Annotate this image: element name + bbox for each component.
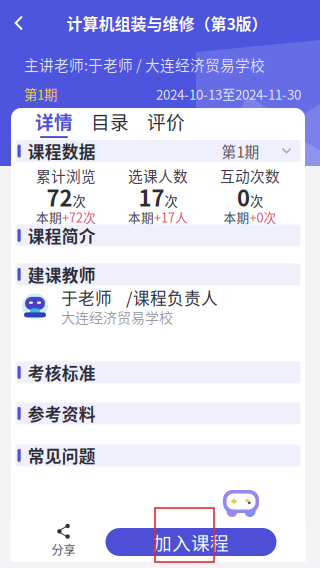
staticText: 于老师 [61,288,112,307]
staticText: +0次 [249,209,276,224]
staticText: 次 [250,192,263,208]
staticText: 课程数据 [28,141,96,161]
staticText: 大连经济贸易学校 [61,308,173,325]
staticText: 互动次数 [220,167,280,184]
staticText: 本期 [128,209,154,224]
button[interactable]: 详情 [35,110,73,138]
staticText: 常见问题 [28,445,96,465]
staticText: +72次 [62,209,96,224]
button[interactable]: 目录 [91,110,129,138]
button[interactable]: 返回 [0,6,44,40]
staticText: 次 [164,192,177,208]
staticText: 次 [72,192,85,208]
staticText: ✦ [229,494,239,508]
staticText: 选课人数 [128,167,188,184]
staticText: 累计浏览 [36,167,96,184]
staticText: 72 [46,185,72,208]
button[interactable]: 加入课程 [105,528,276,556]
staticText: 目录 [91,110,129,132]
staticText: 计算机组装与维修（第3版） [66,13,267,32]
staticText: 课程简介 [28,225,96,245]
staticText: 本期 [223,209,249,224]
staticText: 2024-10-13至2024-11-30 [156,86,301,102]
staticText: 加入课程 [153,531,229,553]
staticText: 建课教师 [28,264,96,284]
staticText: 第1期 [221,142,259,160]
staticText: +17人 [154,209,188,224]
staticText: 主讲老师:于老师 / 大连经济贸易学校 [24,56,265,73]
staticText: 参考资料 [28,403,96,423]
staticText: 0 [237,185,250,208]
staticText: 第1期 [24,86,57,102]
staticText: /课程负责人 [126,288,218,307]
button[interactable]: 评价 [147,110,185,138]
staticText: 17 [138,185,164,208]
staticText: 评价 [147,110,185,132]
staticText: 详情 [35,110,73,132]
staticText: 本期 [36,209,62,224]
staticText: 考核标准 [28,362,96,382]
button[interactable]: 分享 [40,522,86,562]
staticText: 分享 [51,542,75,557]
staticText: ✦ [244,496,251,505]
